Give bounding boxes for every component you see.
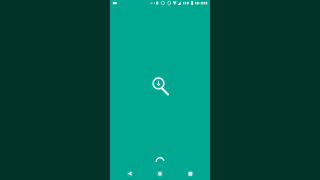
button[interactable]: Recent apps <box>182 164 198 180</box>
button[interactable]: App logo <box>150 75 168 93</box>
button[interactable]: Home <box>152 164 168 180</box>
button[interactable]: Back <box>122 164 138 180</box>
